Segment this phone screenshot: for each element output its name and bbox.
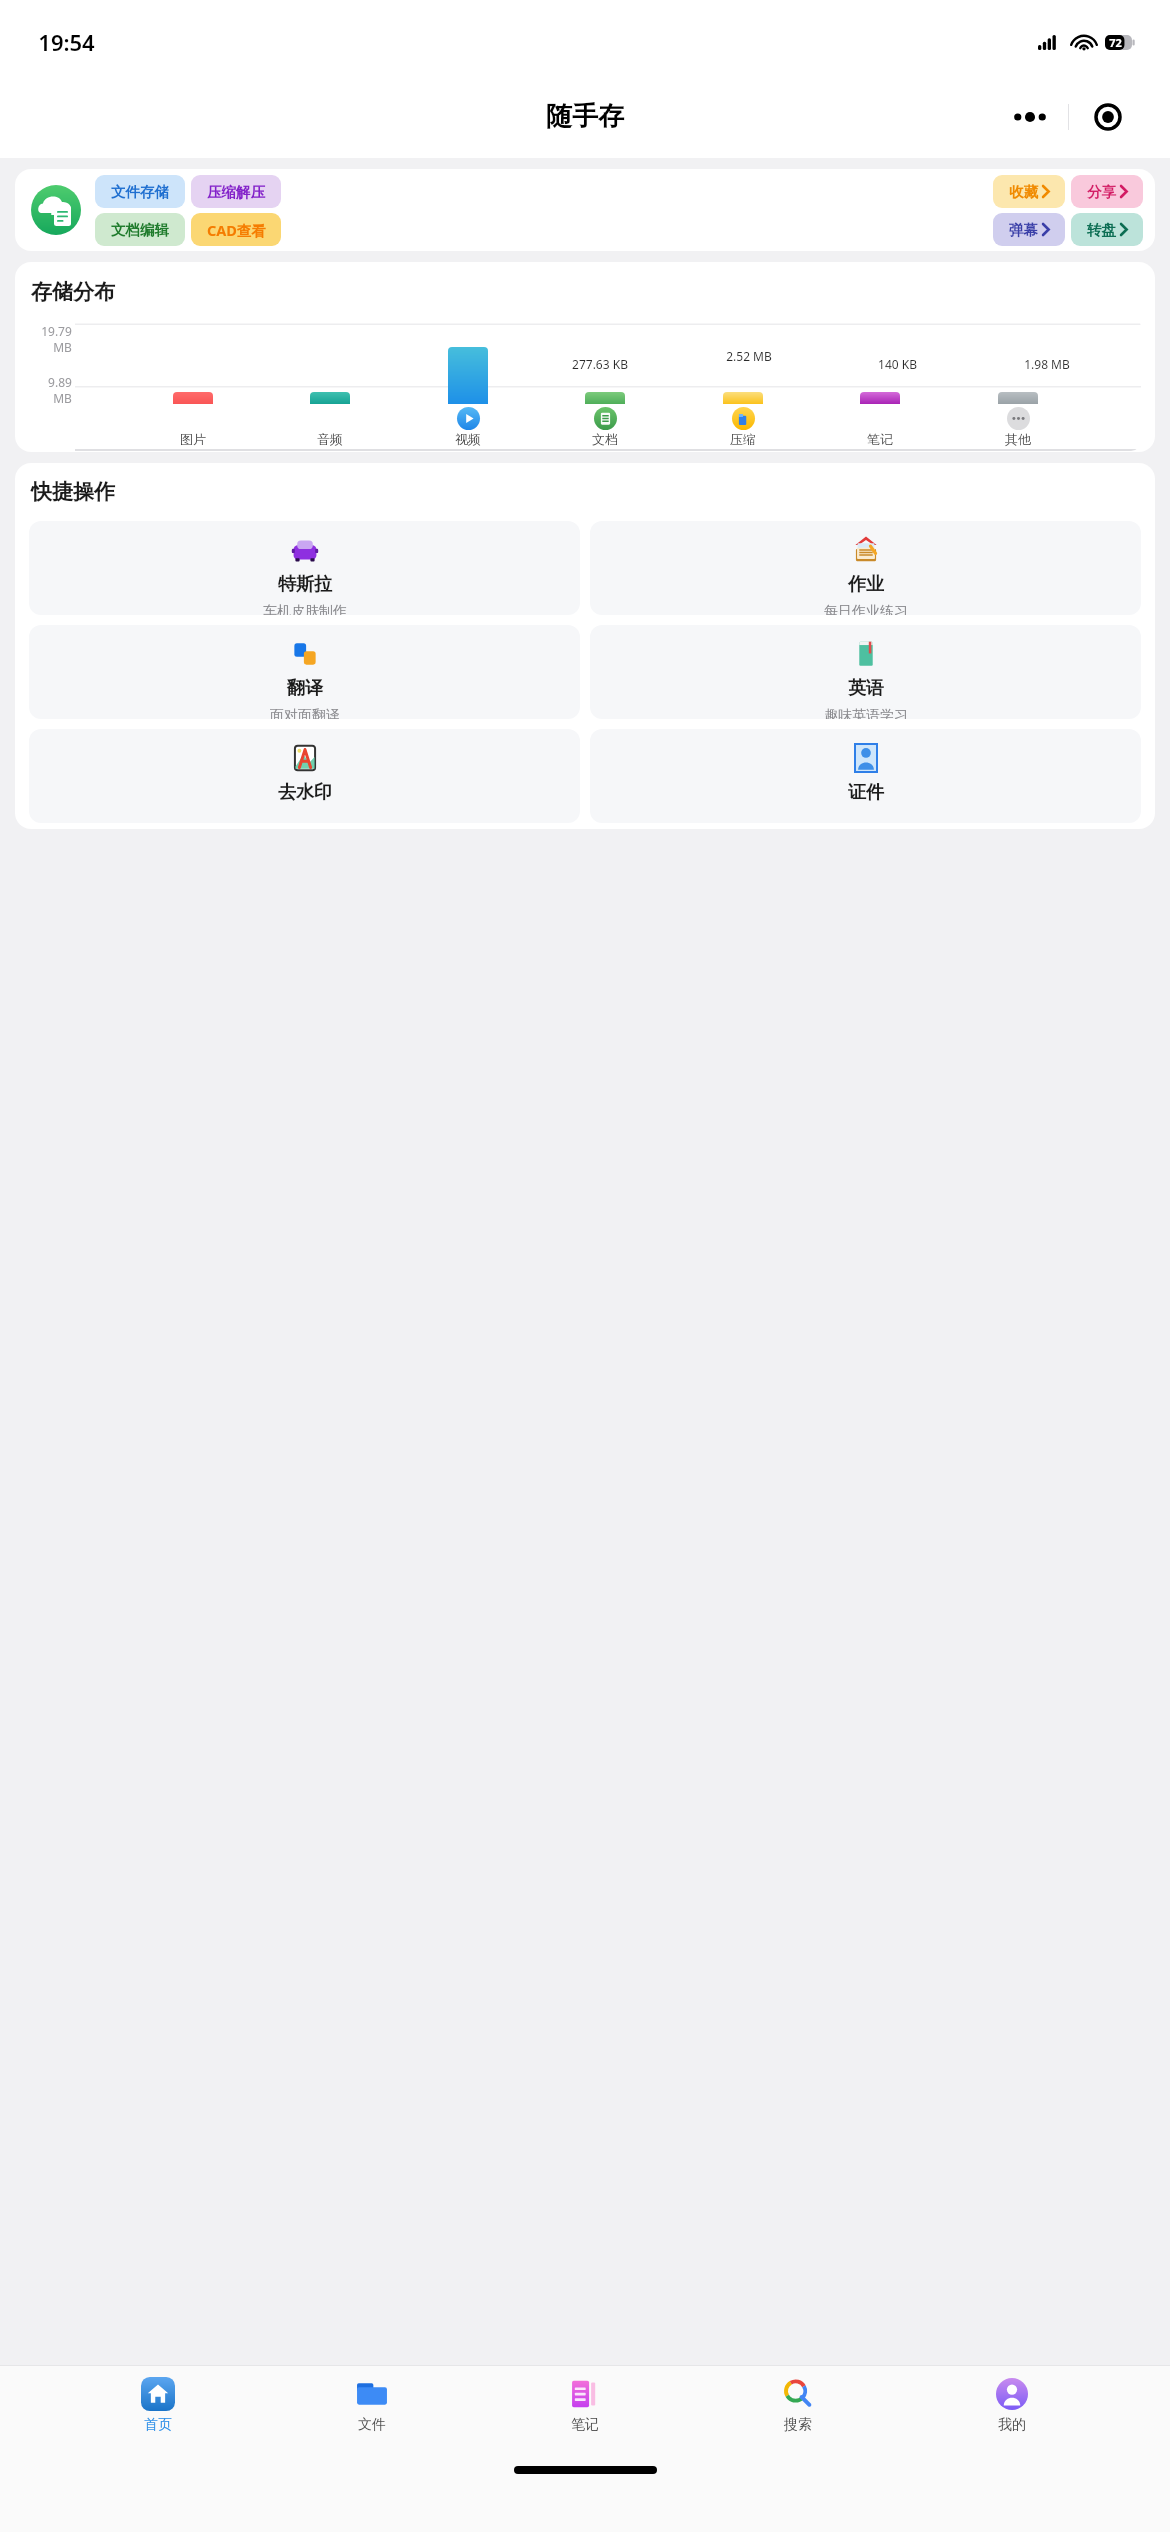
- button[interactable]: [585, 392, 625, 404]
- staticText: 去水印: [278, 781, 332, 804]
- staticText: 转盘: [1087, 221, 1116, 239]
- button[interactable]: [998, 392, 1038, 404]
- staticText: 压缩解压: [207, 183, 265, 201]
- staticText: 1.98 MB: [1024, 356, 1070, 372]
- button[interactable]: 证件: [590, 729, 1141, 823]
- button[interactable]: 去水印: [29, 729, 580, 823]
- staticText: 首页: [144, 2416, 172, 2434]
- button[interactable]: 分享: [1071, 175, 1143, 208]
- staticText: 压缩: [730, 431, 756, 447]
- staticText: 其他: [1005, 431, 1031, 447]
- staticText: 9.89: [48, 374, 72, 390]
- button[interactable]: CAD查看: [191, 213, 281, 246]
- button[interactable]: 英语: [590, 625, 1141, 719]
- staticText: 19:54: [38, 27, 95, 57]
- staticText: 视频: [455, 431, 481, 447]
- button[interactable]: 笔记: [530, 2366, 640, 2444]
- staticText: 车机皮肤制作: [263, 603, 347, 615]
- button[interactable]: 压缩解压: [191, 175, 281, 208]
- button[interactable]: More: [991, 89, 1068, 145]
- staticText: 文件: [358, 2416, 386, 2434]
- button[interactable]: 特斯拉: [29, 521, 580, 615]
- staticText: 英语: [848, 677, 884, 700]
- button[interactable]: [860, 392, 900, 404]
- button[interactable]: [173, 392, 213, 404]
- staticText: 72: [1109, 35, 1122, 50]
- button[interactable]: [310, 392, 350, 404]
- button[interactable]: 文件存储: [95, 175, 185, 208]
- button[interactable]: Target: [1069, 89, 1146, 145]
- staticText: 特斯拉: [278, 573, 332, 596]
- staticText: 证件: [848, 781, 884, 804]
- staticText: 文档: [592, 431, 618, 447]
- staticText: 音频: [317, 431, 343, 447]
- button[interactable]: 搜索: [743, 2366, 853, 2444]
- staticText: 2.52 MB: [726, 348, 772, 364]
- staticText: 面对面翻译: [270, 707, 340, 719]
- staticText: 收藏: [1009, 183, 1038, 201]
- button[interactable]: 翻译: [29, 625, 580, 719]
- staticText: 277.63 KB: [572, 356, 628, 372]
- staticText: 随手存: [546, 100, 624, 133]
- staticText: 快捷操作: [31, 479, 115, 505]
- staticText: 文件存储: [111, 183, 169, 201]
- staticText: 分享: [1087, 183, 1116, 201]
- staticText: 趣味英语学习: [824, 707, 908, 719]
- button[interactable]: 弹幕: [993, 213, 1065, 246]
- button[interactable]: 首页: [103, 2366, 213, 2444]
- staticText: 笔记: [867, 431, 893, 447]
- staticText: MB: [53, 390, 72, 406]
- button[interactable]: [448, 347, 488, 404]
- button[interactable]: 我的: [957, 2366, 1067, 2444]
- staticText: 存储分布: [31, 279, 115, 305]
- staticText: 弹幕: [1009, 221, 1038, 239]
- staticText: 翻译: [287, 677, 323, 700]
- button[interactable]: 收藏: [993, 175, 1065, 208]
- staticText: CAD查看: [207, 220, 266, 240]
- staticText: 搜索: [784, 2416, 812, 2434]
- staticText: 每日作业练习: [824, 603, 908, 615]
- staticText: 我的: [998, 2416, 1026, 2434]
- button[interactable]: 作业: [590, 521, 1141, 615]
- staticText: 文档编辑: [111, 221, 169, 239]
- button[interactable]: [723, 392, 763, 404]
- staticText: 19.79: [41, 323, 72, 339]
- staticText: 作业: [848, 573, 884, 596]
- button[interactable]: 文件: [317, 2366, 427, 2444]
- button[interactable]: 文档编辑: [95, 213, 185, 246]
- staticText: 图片: [180, 431, 206, 447]
- button[interactable]: 转盘: [1071, 213, 1143, 246]
- staticText: MB: [53, 339, 72, 355]
- staticText: 140 KB: [878, 356, 917, 372]
- staticText: 笔记: [571, 2416, 599, 2434]
